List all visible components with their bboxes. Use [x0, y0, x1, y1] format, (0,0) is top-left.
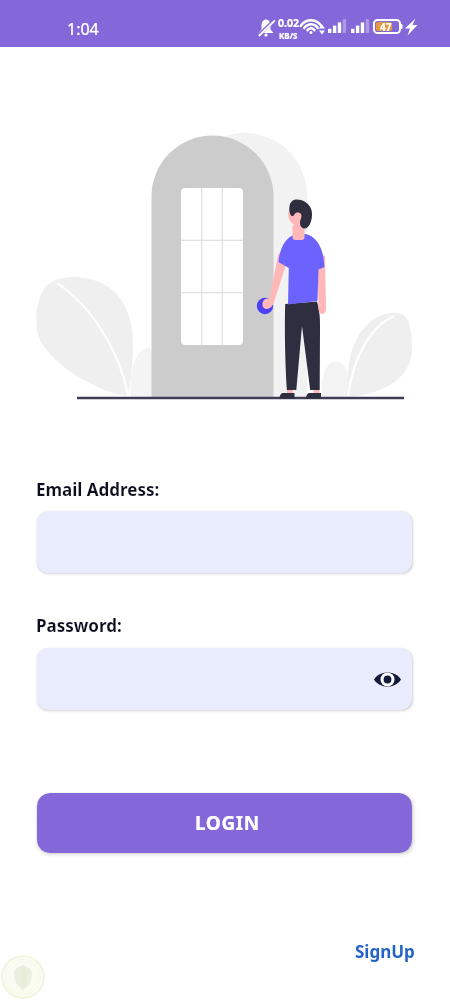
- staticText: KB/S: [279, 30, 298, 41]
- staticText: Password:: [36, 614, 122, 637]
- button[interactable]: SignUp: [355, 940, 415, 963]
- staticText: Email Address:: [36, 478, 160, 501]
- staticText: 47: [380, 20, 392, 34]
- staticText: LOGIN: [195, 810, 260, 836]
- staticText: 1:04: [67, 18, 99, 40]
- staticText: SignUp: [355, 940, 415, 963]
- button[interactable]: Show password: [365, 657, 409, 701]
- staticText: 0.02: [278, 16, 299, 30]
- button[interactable]: Show password: [37, 648, 412, 710]
- button[interactable]: LOGIN: [37, 793, 412, 853]
